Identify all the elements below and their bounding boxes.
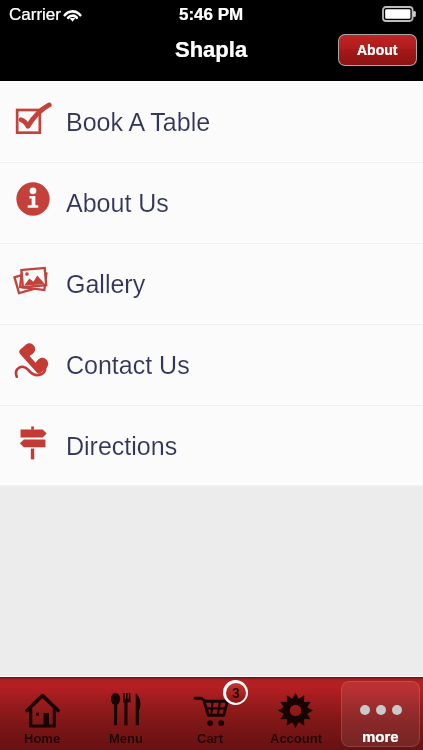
- staticText: Directions: [66, 432, 178, 460]
- other: Menu: [110, 693, 143, 726]
- staticText: 5:46 PM: [179, 5, 244, 24]
- other: Home: [25, 693, 60, 728]
- other: Account: [278, 693, 313, 728]
- staticText: more: [362, 728, 399, 745]
- button[interactable]: Home: [0, 676, 84, 750]
- button[interactable]: Book A Table: [0, 81, 423, 162]
- staticText: Shapla: [175, 37, 248, 62]
- button[interactable]: Directions: [0, 405, 423, 486]
- button[interactable]: Menu: [84, 676, 168, 750]
- staticText: Contact Us: [66, 351, 190, 379]
- button[interactable]: more: [341, 681, 420, 747]
- button[interactable]: Contact Us: [0, 324, 423, 405]
- staticText: Book A Table: [66, 108, 211, 136]
- staticText: About: [357, 42, 398, 58]
- staticText: Gallery: [66, 270, 146, 298]
- button[interactable]: About: [339, 35, 416, 65]
- button[interactable]: Account: [253, 676, 338, 750]
- staticText: Cart: [197, 731, 224, 746]
- button[interactable]: About Us: [0, 162, 423, 243]
- staticText: Home: [24, 731, 61, 746]
- button[interactable]: Cart: [168, 676, 253, 750]
- staticText: 3: [232, 685, 240, 701]
- button[interactable]: Gallery: [0, 243, 423, 324]
- staticText: Account: [270, 731, 322, 746]
- staticText: Menu: [109, 731, 143, 746]
- staticText: About Us: [66, 189, 169, 217]
- other: Cart: [194, 694, 228, 728]
- staticText: Carrier: [9, 5, 61, 24]
